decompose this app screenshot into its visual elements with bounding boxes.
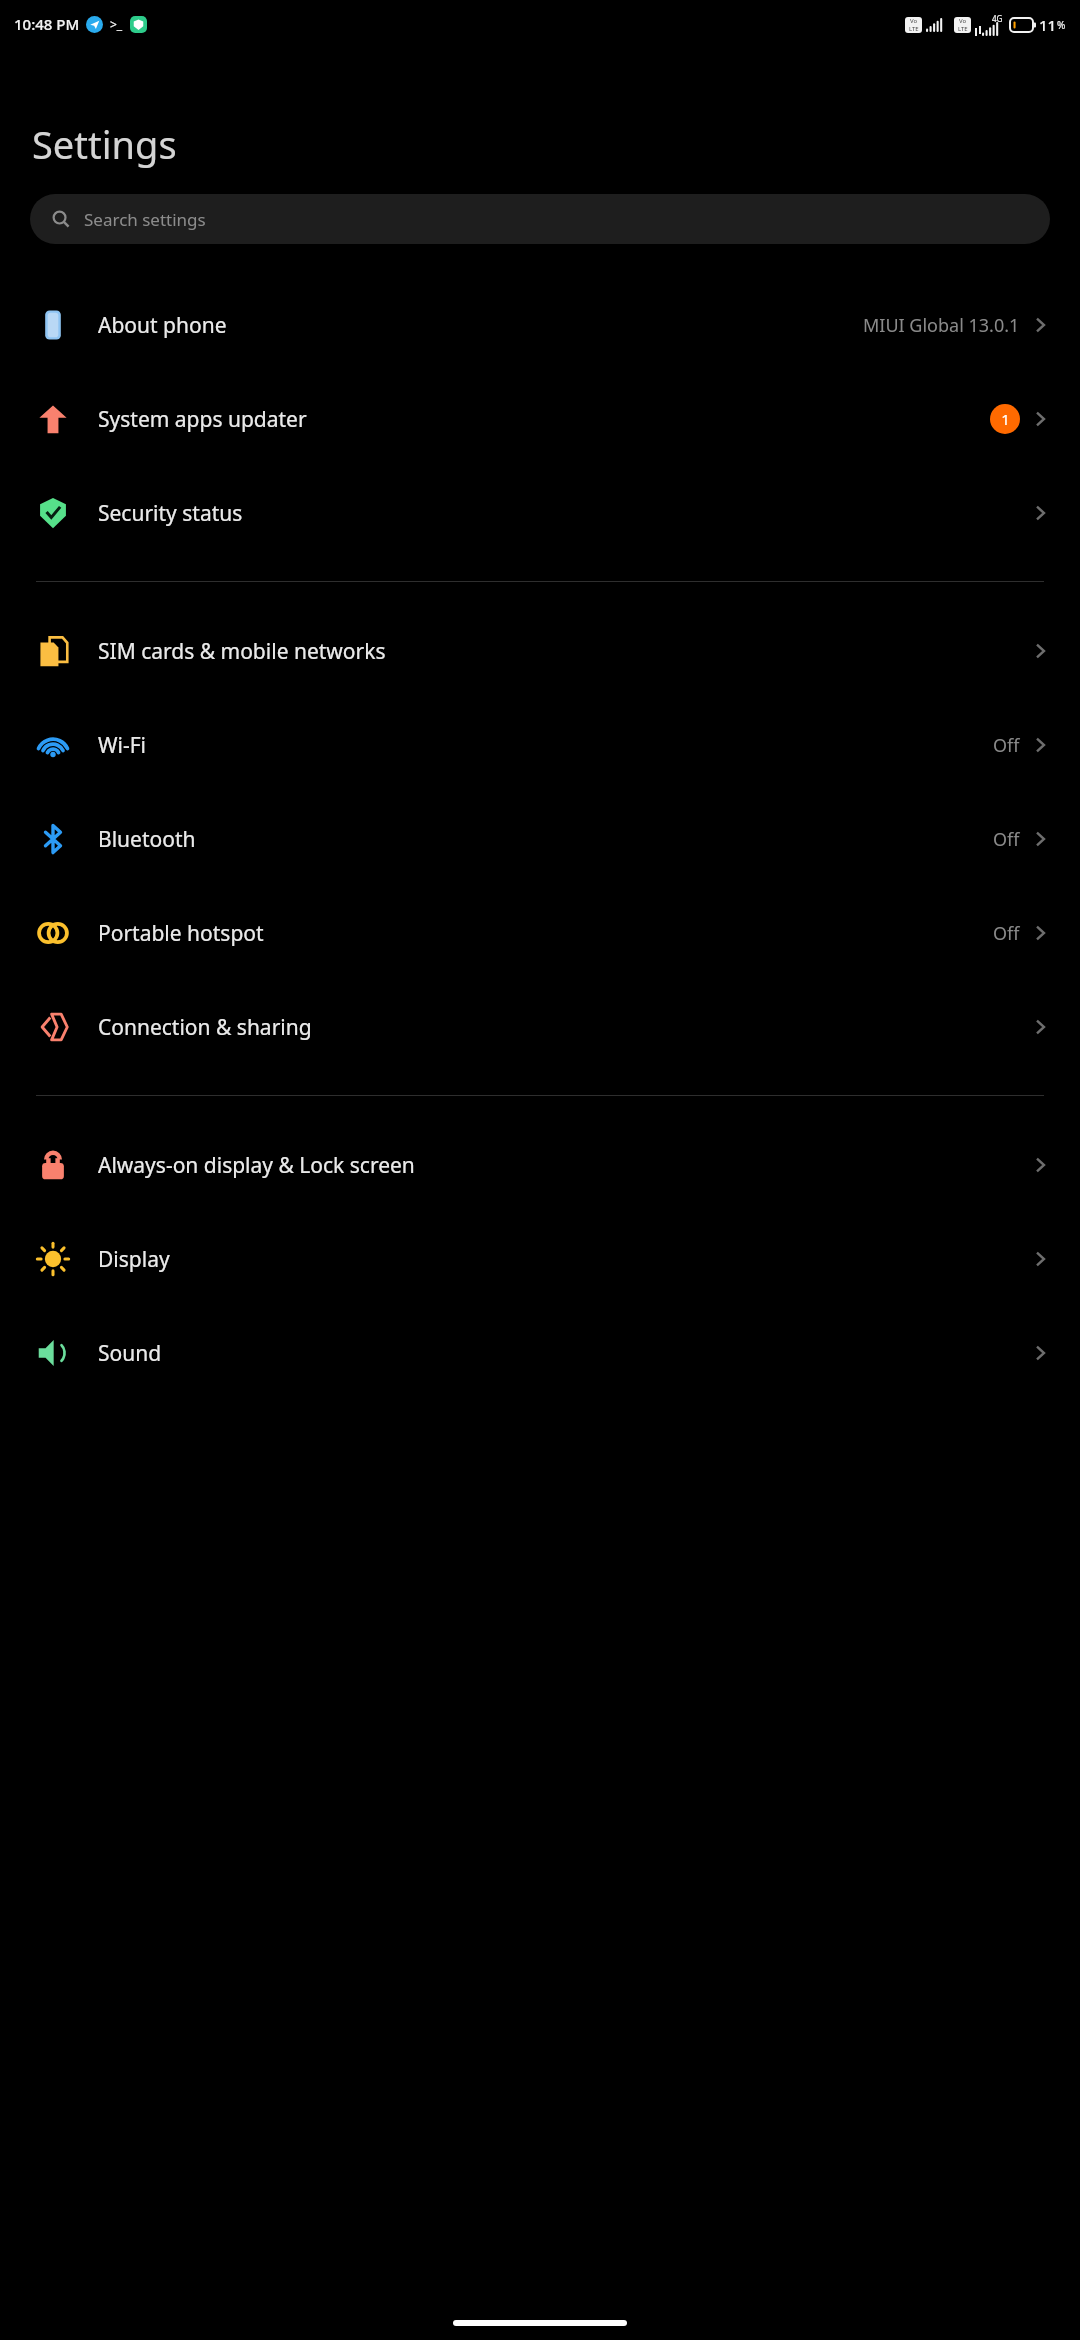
staticText: Display <box>98 1245 1030 1274</box>
staticText: Vo <box>959 17 967 25</box>
button[interactable]: Wi-Fi <box>0 698 1080 792</box>
staticText: LTE <box>958 25 968 33</box>
button[interactable]: Search settings <box>30 194 1050 244</box>
button[interactable]: Security status <box>0 466 1080 560</box>
button[interactable]: System apps updater <box>0 372 1080 466</box>
staticText: MIUI Global 13.0.1 <box>863 313 1020 338</box>
staticText: SIM cards & mobile networks <box>98 637 1030 666</box>
staticText: 1 <box>1001 409 1010 429</box>
staticText: Off <box>993 827 1020 852</box>
button[interactable]: Always-on display & Lock screen <box>0 1118 1080 1212</box>
button[interactable]: Bluetooth <box>0 792 1080 886</box>
staticText: Settings <box>32 118 177 170</box>
button[interactable]: SIM cards & mobile networks <box>0 604 1080 698</box>
staticText: About phone <box>98 311 863 340</box>
staticText: LTE <box>909 25 919 33</box>
staticText: Sound <box>98 1339 1030 1368</box>
button[interactable]: About phone <box>0 278 1080 372</box>
staticText: Off <box>993 733 1020 758</box>
staticText: Connection & sharing <box>98 1013 1030 1042</box>
staticText: Wi-Fi <box>98 731 993 760</box>
staticText: Bluetooth <box>98 825 993 854</box>
staticText: 4G <box>992 13 1003 24</box>
button[interactable]: Display <box>0 1212 1080 1306</box>
button[interactable]: Connection & sharing <box>0 980 1080 1074</box>
staticText: 11 <box>1039 15 1057 35</box>
staticText: Security status <box>98 499 1030 528</box>
button[interactable]: Portable hotspot <box>0 886 1080 980</box>
staticText: Portable hotspot <box>98 919 993 948</box>
staticText: >_ <box>110 16 123 32</box>
staticText: Always-on display & Lock screen <box>98 1151 1030 1180</box>
staticText: System apps updater <box>98 405 990 434</box>
button[interactable]: Sound <box>0 1306 1080 1400</box>
staticText: Search settings <box>84 208 206 231</box>
staticText: % <box>1057 18 1066 32</box>
staticText: 10:48 PM <box>14 14 80 34</box>
staticText: Vo <box>910 17 918 25</box>
staticText: Off <box>993 921 1020 946</box>
